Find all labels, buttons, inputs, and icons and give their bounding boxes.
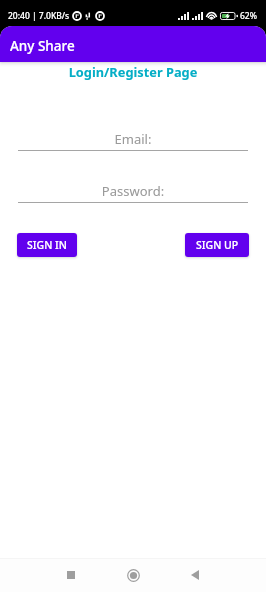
staticText: Password: xyxy=(18,182,248,200)
button[interactable]: Back xyxy=(174,558,216,592)
staticText: 20:40 | 7.0KB/s xyxy=(8,10,70,22)
button[interactable]: SIGN IN xyxy=(17,233,77,257)
staticText: SIGN UP xyxy=(196,238,239,252)
staticText: Email: xyxy=(18,130,248,148)
staticText: SIGN IN xyxy=(27,238,67,252)
staticText: Login/Register Page xyxy=(0,63,266,80)
button[interactable]: Email: xyxy=(18,130,248,151)
staticText: Any Share xyxy=(10,37,75,55)
button[interactable]: Password: xyxy=(18,182,248,203)
button[interactable]: SIGN UP xyxy=(185,233,249,257)
button[interactable]: Any Share xyxy=(0,26,266,62)
button[interactable]: Home xyxy=(112,558,154,592)
button[interactable]: Recent apps xyxy=(50,558,92,592)
staticText: 62% xyxy=(240,10,257,22)
